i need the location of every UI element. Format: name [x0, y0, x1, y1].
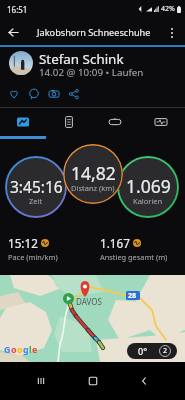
button[interactable]: Home	[74, 362, 112, 400]
staticText: 1.167	[100, 235, 130, 251]
button[interactable]: 3:45:16	[5, 156, 67, 218]
button[interactable]: 15:12	[0, 233, 92, 265]
button[interactable]: Comment	[26, 84, 42, 104]
staticText: o	[17, 343, 23, 355]
staticText: Pace (min/km)	[8, 252, 58, 262]
button[interactable]: Recent apps	[22, 362, 60, 400]
button[interactable]: Share	[66, 84, 82, 104]
staticText: 2	[163, 346, 168, 356]
staticText: G	[4, 343, 11, 355]
staticText: 1.069	[126, 174, 171, 198]
button[interactable]: Profile photo	[9, 51, 33, 75]
staticText: e	[32, 343, 38, 355]
staticText: 14,82	[71, 161, 116, 185]
staticText: l	[29, 343, 32, 355]
button[interactable]: More options	[162, 23, 182, 43]
staticText: 3:45:16	[10, 176, 63, 197]
button[interactable]: Map controls	[127, 343, 177, 359]
staticText: 28	[128, 291, 137, 301]
staticText: Distanz (km)	[71, 183, 115, 193]
staticText: 42%	[161, 4, 175, 14]
staticText: g	[23, 343, 29, 355]
button[interactable]: Like	[6, 84, 22, 104]
button[interactable]: Chart	[0, 108, 46, 136]
button[interactable]: 1.167	[92, 233, 184, 265]
button[interactable]: Back	[125, 362, 163, 400]
staticText: 14.02 @ 10:09 • Laufen	[39, 66, 144, 79]
staticText: 0°	[138, 345, 148, 357]
button[interactable]: 14,82	[63, 144, 123, 204]
staticText: 15:12	[8, 235, 38, 251]
staticText: 16:51	[7, 4, 28, 15]
button[interactable]: 1.069	[117, 156, 179, 218]
staticText: o	[11, 343, 17, 355]
staticText: Anstieg gesamt (m)	[100, 252, 168, 262]
staticText: Kalorien	[133, 196, 163, 206]
button[interactable]: Heart rate	[138, 108, 184, 136]
button[interactable]: Photos	[46, 84, 62, 104]
button[interactable]: Back	[2, 21, 25, 44]
button[interactable]: Details	[46, 108, 92, 136]
staticText: Zeit	[29, 196, 43, 206]
staticText: Stefan Schink	[39, 50, 124, 68]
staticText: DAVOS	[76, 296, 102, 307]
staticText: Jakobshorn Schneeschuhe	[37, 26, 151, 39]
button[interactable]: Laps	[92, 108, 138, 136]
